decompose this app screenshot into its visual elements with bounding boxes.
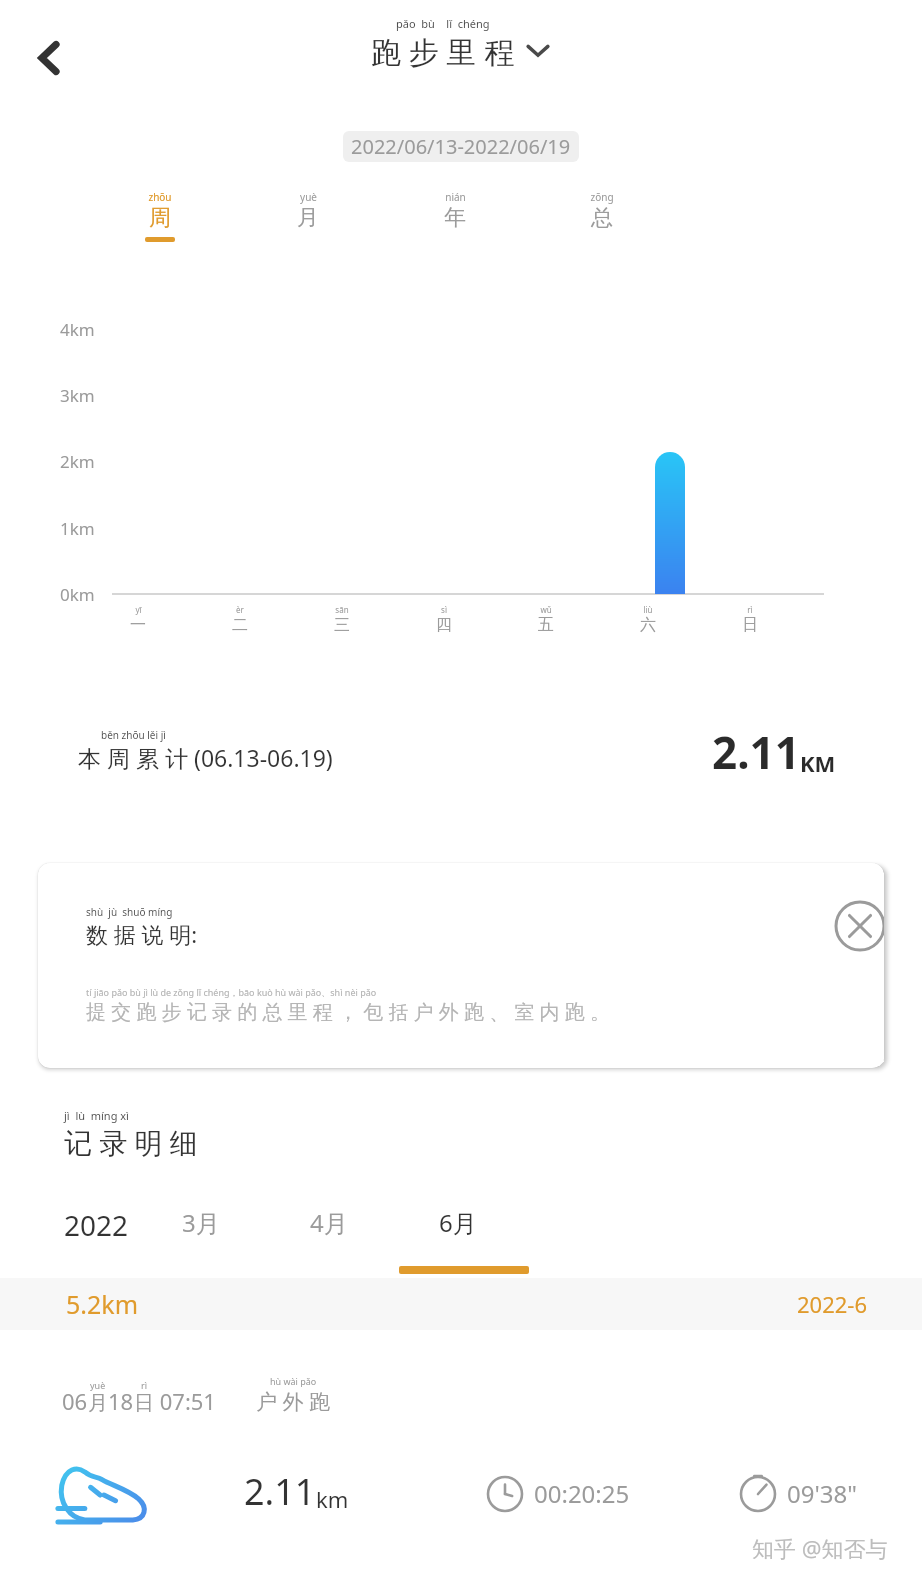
staticText: èr bbox=[236, 604, 244, 615]
staticText: yuè bbox=[300, 190, 317, 204]
staticText: 总 bbox=[591, 204, 613, 232]
button[interactable]: 4月 bbox=[310, 1198, 394, 1272]
staticText: km bbox=[316, 1484, 349, 1514]
staticText: 2km bbox=[60, 450, 95, 473]
button[interactable]: Back bbox=[20, 28, 80, 88]
staticText: 跑 步 里 程 bbox=[371, 31, 515, 72]
button[interactable]: 5.2km bbox=[0, 1278, 922, 1330]
staticText: tí jiāo pǎo bù jì lù de zǒng lǐ chéng，bā… bbox=[86, 986, 377, 998]
staticText: 提 交 跑 步 记 录 的 总 里 程 ， 包 括 户 外 跑 、 室 内 跑 … bbox=[86, 998, 611, 1025]
staticText: 06 bbox=[62, 1386, 88, 1416]
staticText: shù jù shuō míng bbox=[86, 905, 173, 919]
staticText: jì lù míng xì bbox=[64, 1108, 129, 1123]
staticText: yuè bbox=[90, 1379, 106, 1391]
staticText: 周 bbox=[149, 204, 171, 232]
button[interactable]: Close bbox=[824, 890, 884, 962]
staticText: sì bbox=[441, 604, 447, 615]
staticText: 月 bbox=[88, 1391, 108, 1416]
staticText: zhōu bbox=[148, 190, 172, 204]
staticText: nián bbox=[445, 190, 466, 204]
staticText: 1km bbox=[60, 517, 95, 540]
staticText: 0km bbox=[60, 583, 95, 606]
staticText: 5.2km bbox=[66, 1287, 139, 1321]
staticText: yī bbox=[135, 604, 142, 615]
staticText: 2.11 bbox=[712, 722, 800, 782]
button[interactable]: nián bbox=[409, 190, 501, 256]
other: Running shoe bbox=[56, 1447, 152, 1543]
button[interactable]: zōng bbox=[556, 190, 648, 256]
staticText: (06.13-06.19) bbox=[188, 742, 333, 773]
staticText: 六 bbox=[640, 615, 656, 635]
staticText: 09'38" bbox=[787, 1477, 858, 1510]
staticText: 一 bbox=[130, 615, 146, 635]
staticText: 五 bbox=[538, 615, 554, 635]
staticText: 日 bbox=[742, 615, 758, 635]
staticText: 2022 bbox=[64, 1206, 129, 1244]
staticText: 18 bbox=[108, 1386, 134, 1416]
staticText: wǔ bbox=[540, 604, 552, 615]
staticText: rì bbox=[747, 604, 753, 615]
button[interactable]: 6月 bbox=[439, 1198, 523, 1272]
button[interactable]: 3月 bbox=[182, 1198, 266, 1272]
button[interactable]: pǎo bù lǐ chéng bbox=[371, 16, 551, 72]
button[interactable]: yuè bbox=[262, 190, 354, 256]
staticText: 2022-6 bbox=[797, 1289, 868, 1319]
staticText: pǎo bù lǐ chéng bbox=[396, 16, 490, 31]
staticText: 数 据 说 明: bbox=[86, 919, 198, 949]
staticText: 月 bbox=[297, 204, 319, 232]
staticText: rì bbox=[141, 1379, 148, 1391]
staticText: 四 bbox=[436, 615, 452, 635]
button[interactable]: zhōu bbox=[114, 190, 206, 256]
staticText: 户 外 跑 bbox=[256, 1387, 330, 1416]
staticText: 00:20:25 bbox=[534, 1477, 630, 1510]
staticText: 3km bbox=[60, 384, 95, 407]
staticText: 三 bbox=[334, 615, 350, 635]
staticText: KM bbox=[800, 748, 836, 778]
staticText: 记 录 明 细 bbox=[64, 1123, 198, 1161]
staticText: 4月 bbox=[310, 1206, 348, 1239]
staticText: zōng bbox=[590, 190, 614, 204]
staticText: 2.11 bbox=[244, 1467, 316, 1516]
button[interactable]: 2022/06/13-2022/06/19 bbox=[351, 133, 571, 160]
staticText: 07:51 bbox=[154, 1386, 216, 1416]
staticText: 2022/06/13-2022/06/19 bbox=[351, 133, 571, 160]
staticText: 日 bbox=[134, 1391, 154, 1416]
staticText: 二 bbox=[232, 615, 248, 635]
staticText: běn zhōu lěi jì bbox=[101, 728, 166, 742]
staticText: 本 周 累 计 bbox=[78, 742, 188, 773]
staticText: liù bbox=[643, 604, 653, 615]
staticText: hù wài pǎo bbox=[270, 1375, 317, 1387]
staticText: 4km bbox=[60, 318, 95, 341]
button[interactable]: 06 bbox=[0, 1355, 922, 1555]
staticText: sān bbox=[335, 604, 349, 615]
staticText: 知乎 @知否与 bbox=[752, 1533, 888, 1563]
staticText: 3月 bbox=[182, 1206, 220, 1239]
staticText: 6月 bbox=[439, 1206, 477, 1239]
staticText: 年 bbox=[444, 204, 466, 232]
